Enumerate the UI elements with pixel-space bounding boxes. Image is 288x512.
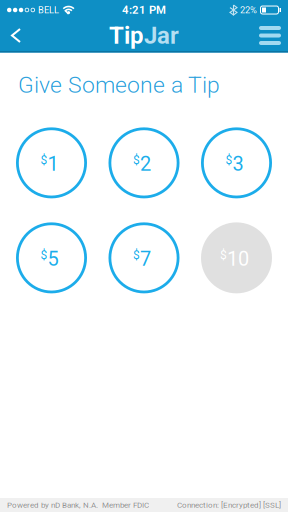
staticText: $ (225, 153, 232, 167)
staticText: BELL (38, 4, 59, 15)
button[interactable]: $ (16, 127, 87, 198)
staticText: 1 (47, 152, 58, 176)
staticText: 7 (140, 247, 151, 271)
button[interactable]: $ (201, 127, 272, 198)
staticText: Give Someone a Tip (18, 71, 220, 98)
staticText: $ (40, 248, 47, 262)
button[interactable]: $ (16, 222, 87, 293)
staticText: 3 (232, 152, 243, 176)
staticText: $ (220, 248, 227, 262)
staticText: Tip (109, 21, 144, 49)
button[interactable]: $ (201, 222, 272, 293)
staticText: 4:21 PM (122, 3, 166, 17)
staticText: 2 (140, 152, 151, 176)
staticText: $ (133, 153, 140, 167)
button[interactable]: Menu (259, 26, 288, 45)
staticText: Powered by nD Bank, N.A. Member FDIC (7, 500, 149, 510)
button[interactable]: Back (0, 28, 22, 43)
staticText: 10 (227, 247, 249, 271)
staticText: Jar (144, 21, 179, 49)
button[interactable]: $ (108, 222, 179, 293)
staticText: Connection: [Encrypted] [SSL] (177, 500, 281, 510)
button[interactable]: $ (108, 127, 179, 198)
staticText: $ (40, 153, 47, 167)
staticText: 5 (47, 247, 58, 271)
staticText: 22% (240, 4, 257, 15)
staticText: $ (133, 248, 140, 262)
